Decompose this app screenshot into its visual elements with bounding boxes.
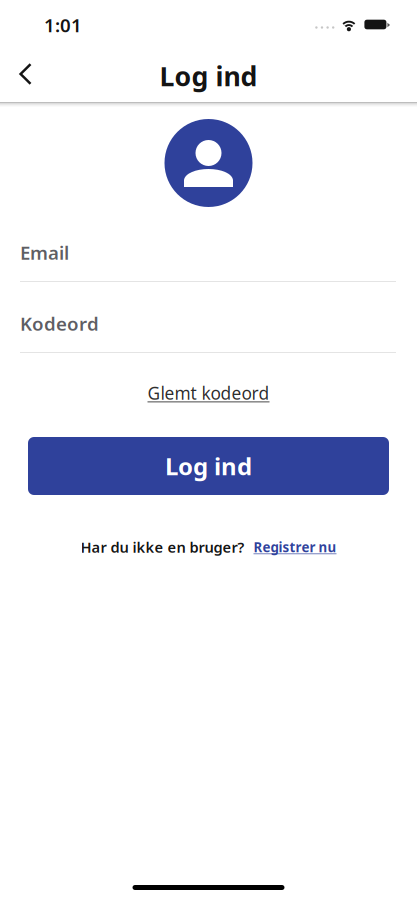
staticText: Kodeord	[20, 311, 99, 336]
staticText: Registrer nu	[253, 538, 336, 556]
button[interactable]: Registrer nu	[253, 538, 336, 556]
button[interactable]: Email	[20, 243, 396, 282]
staticText: 1:01	[44, 13, 82, 37]
staticText: Glemt kodeord	[147, 381, 269, 404]
button[interactable]: Glemt kodeord	[147, 383, 269, 403]
staticText: Har du ikke en bruger?	[80, 537, 244, 557]
staticText: Email	[20, 240, 69, 265]
staticText: Log ind	[159, 58, 257, 94]
staticText: Log ind	[165, 450, 252, 482]
button[interactable]: Kodeord	[20, 314, 396, 353]
button[interactable]: Back	[5, 52, 47, 96]
button[interactable]: Log ind	[28, 437, 389, 495]
